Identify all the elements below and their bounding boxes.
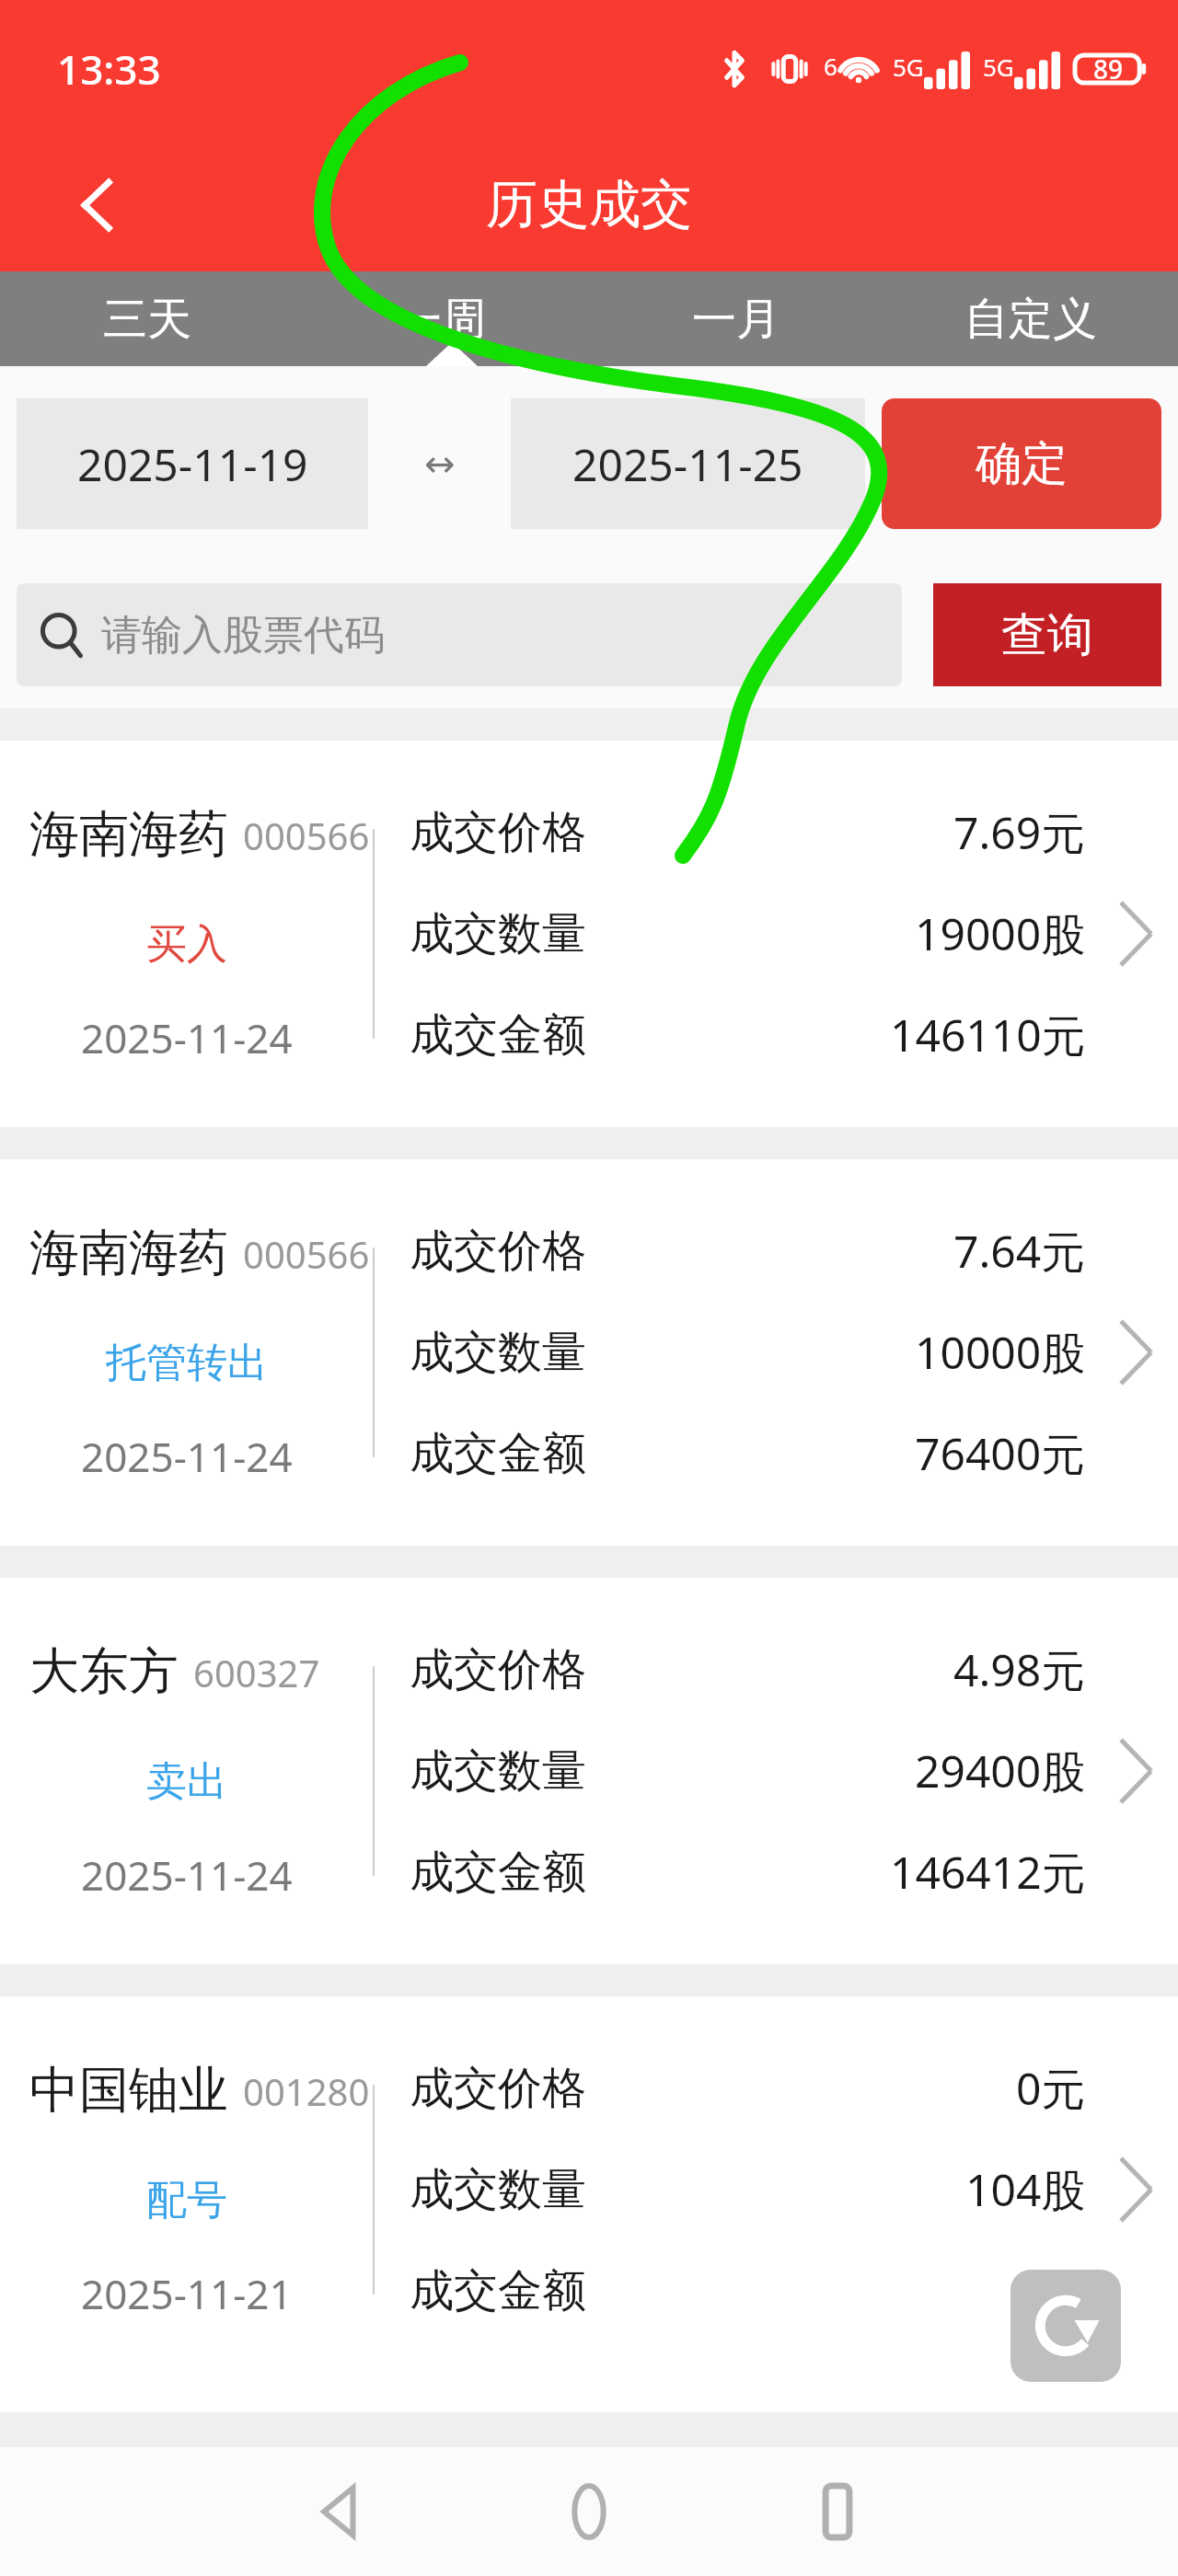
staticText: 配号 [146,2175,227,2225]
button[interactable]: Refresh [1011,2270,1121,2382]
staticText: 成交数量 [410,2162,586,2217]
staticText: 成交价格 [410,1642,586,1697]
staticText: 托管转出 [106,1338,268,1388]
staticText: 7.69元 [953,802,1086,863]
staticText: 4.98元 [953,1639,1086,1700]
staticText: 29400股 [915,1741,1086,1801]
staticText: 三天 [103,292,191,347]
staticText: 7.64元 [953,1221,1086,1282]
staticText: 76400元 [915,1423,1086,1484]
staticText: 10000股 [915,1322,1086,1383]
button[interactable]: Recents [764,2447,911,2576]
staticText: 中国铀业 [29,2059,228,2122]
staticText: 2025-11-24 [81,1429,293,1484]
staticText: 买入 [146,919,227,970]
staticText: 成交数量 [410,1743,586,1799]
staticText: 请输入股票代码 [101,610,385,661]
button[interactable]: 一周 [294,271,589,366]
staticText: 146110元 [890,1005,1086,1065]
button[interactable]: 大东方 [0,1578,1178,1964]
staticText: 000566 [243,1229,370,1279]
staticText: 2025-11-24 [81,1010,293,1065]
staticText: 成交金额 [410,1845,586,1900]
staticText: 大东方 [29,1640,179,1703]
staticText: 历史成交 [486,172,692,237]
staticText: 成交价格 [410,1224,586,1279]
staticText: 卖出 [146,1756,227,1807]
button[interactable]: 海南海药 [0,1159,1178,1546]
staticText: 2025-11-25 [572,434,803,494]
button[interactable]: 2025-11-19 [17,398,368,529]
staticText: 6 [824,50,837,82]
staticText: 一周 [398,292,486,347]
staticText: 104股 [965,2159,1086,2220]
staticText: 89 [1093,52,1124,86]
staticText: 成交金额 [410,1007,586,1063]
button[interactable]: 自定义 [883,271,1178,366]
staticText: 600327 [193,1648,320,1697]
staticText: 一月 [692,292,780,347]
staticText: 19000股 [915,903,1086,964]
staticText: 0元 [1016,2058,1086,2119]
staticText: 2025-11-21 [81,2266,293,2321]
staticText: 成交金额 [410,2263,586,2318]
staticText: 查询 [1001,606,1093,664]
staticText: 成交价格 [410,2061,586,2116]
staticText: 2025-11-19 [77,434,308,494]
staticText: 成交数量 [410,906,586,961]
staticText: 5G [893,51,924,83]
staticText: 成交价格 [410,805,586,860]
staticText: 成交数量 [410,1325,586,1380]
staticText: 确定 [976,435,1068,493]
staticText: 5G [983,51,1014,83]
staticText: 自定义 [964,292,1097,347]
button[interactable]: Back [48,155,149,256]
button[interactable]: 中国铀业 [0,1996,1178,2383]
staticText: 海南海药 [29,1222,228,1284]
button[interactable]: 三天 [0,271,294,366]
button[interactable]: 海南海药 [0,741,1178,1127]
button[interactable]: 请输入股票代码 [17,583,902,686]
button[interactable]: Back [267,2447,414,2576]
staticText: 146412元 [890,1842,1086,1903]
button[interactable]: 2025-11-25 [511,398,865,529]
staticText: 2025-11-24 [81,1847,293,1903]
button[interactable]: 确定 [882,398,1161,529]
staticText: 001280 [243,2066,370,2116]
staticText: 海南海药 [29,803,228,866]
button[interactable]: Home [515,2447,663,2576]
staticText: 成交金额 [410,1426,586,1481]
button[interactable]: 查询 [933,583,1161,686]
staticText: 000566 [243,811,370,860]
staticText: 0元 [1016,2260,1086,2321]
staticText: ↔ [424,443,456,486]
staticText: 13:33 [57,41,161,97]
button[interactable]: 一月 [589,271,883,366]
